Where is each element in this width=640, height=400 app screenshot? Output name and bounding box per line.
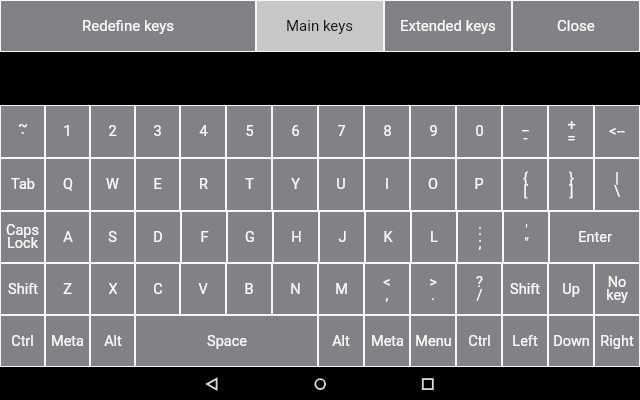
staticText: X (108, 281, 118, 298)
button[interactable]: 1 (45, 105, 90, 158)
button[interactable]: Space (135, 315, 318, 367)
staticText: _ - (522, 117, 529, 147)
button[interactable]: M (318, 263, 364, 315)
button[interactable]: <-- (594, 105, 640, 158)
staticText: Meta (51, 333, 84, 350)
button[interactable]: | \ (594, 158, 640, 211)
button[interactable]: I (364, 158, 410, 211)
button[interactable]: } ] (548, 158, 594, 211)
staticText: H (291, 229, 302, 246)
button[interactable]: F (181, 211, 227, 263)
button[interactable]: Y (272, 158, 318, 211)
staticText: 4 (199, 123, 208, 140)
button[interactable]: S (90, 211, 135, 263)
button[interactable]: K (365, 211, 411, 263)
button[interactable]: O (410, 158, 456, 211)
button[interactable]: 3 (135, 105, 180, 158)
staticText: > . (429, 274, 437, 304)
button[interactable]: J (319, 211, 365, 263)
button[interactable]: No key (594, 263, 640, 315)
button[interactable]: 2 (90, 105, 135, 158)
staticText: Ctrl (11, 333, 34, 350)
button[interactable]: Caps Lock (0, 211, 45, 263)
button[interactable]: ~ ` (0, 105, 45, 158)
staticText: Right (600, 333, 634, 350)
button[interactable]: Up (548, 263, 594, 315)
button[interactable]: Enter (549, 211, 640, 263)
button[interactable]: Shift (0, 263, 45, 315)
button[interactable]: : ; (457, 211, 503, 263)
staticText: <-- (609, 123, 625, 140)
button[interactable]: 5 (226, 105, 272, 158)
button[interactable]: Meta (364, 315, 410, 367)
button[interactable]: A (45, 211, 90, 263)
staticText: Tab (11, 176, 35, 193)
button[interactable]: Ctrl (0, 315, 45, 367)
staticText: Menu (415, 333, 452, 350)
button[interactable]: 8 (364, 105, 410, 158)
button[interactable]: N (272, 263, 318, 315)
button[interactable]: Tab (0, 158, 45, 211)
button[interactable]: G (227, 211, 273, 263)
staticText: Extended keys (400, 17, 496, 35)
button[interactable]: 0 (456, 105, 502, 158)
button[interactable]: 9 (410, 105, 456, 158)
button[interactable]: Q (45, 158, 90, 211)
button[interactable]: ' " (503, 211, 549, 263)
button[interactable]: Main keys (256, 0, 384, 52)
staticText: Shift (8, 281, 38, 298)
staticText: Y (291, 176, 300, 193)
staticText: { [ (523, 170, 528, 200)
button[interactable]: V (180, 263, 226, 315)
button[interactable]: U (318, 158, 364, 211)
button[interactable]: Recent apps (324, 367, 396, 400)
button[interactable]: < , (364, 263, 410, 315)
button[interactable]: B (226, 263, 272, 315)
button[interactable]: > . (410, 263, 456, 315)
button[interactable]: X (90, 263, 135, 315)
button[interactable]: W (90, 158, 135, 211)
button[interactable]: Right (594, 315, 640, 367)
button[interactable]: + = (548, 105, 594, 158)
button[interactable]: Down (548, 315, 594, 367)
button[interactable]: 4 (180, 105, 226, 158)
button[interactable]: R (180, 158, 226, 211)
button[interactable]: Menu (410, 315, 456, 367)
staticText: 3 (153, 123, 162, 140)
button[interactable]: Shift (502, 263, 548, 315)
button[interactable]: Alt (90, 315, 135, 367)
staticText: T (245, 176, 254, 193)
button[interactable]: _ - (502, 105, 548, 158)
button[interactable]: T (226, 158, 272, 211)
button[interactable]: 7 (318, 105, 364, 158)
button[interactable]: Home (252, 367, 324, 400)
button[interactable]: Back (180, 367, 252, 400)
button[interactable]: Redefine keys (0, 0, 256, 52)
staticText: 6 (291, 123, 300, 140)
button[interactable]: Ctrl (456, 315, 502, 367)
button[interactable]: { [ (502, 158, 548, 211)
staticText: F (200, 229, 209, 246)
staticText: W (106, 176, 119, 193)
button[interactable]: H (273, 211, 319, 263)
staticText: Shift (510, 281, 540, 298)
button[interactable]: Close (512, 0, 640, 52)
button[interactable]: 6 (272, 105, 318, 158)
button[interactable]: P (456, 158, 502, 211)
staticText: O (428, 176, 438, 193)
button[interactable]: C (135, 263, 180, 315)
button[interactable]: Extended keys (384, 0, 512, 52)
staticText: R (199, 176, 208, 193)
button[interactable]: D (135, 211, 181, 263)
staticText: : ; (478, 222, 482, 252)
button[interactable]: Z (45, 263, 90, 315)
button[interactable]: Left (502, 315, 548, 367)
button[interactable]: Alt (318, 315, 364, 367)
button[interactable]: E (135, 158, 180, 211)
staticText: L (430, 229, 438, 246)
button[interactable]: L (411, 211, 457, 263)
staticText: V (198, 281, 208, 298)
button[interactable]: ? / (456, 263, 502, 315)
button[interactable]: Meta (45, 315, 90, 367)
staticText: Space (207, 333, 247, 350)
